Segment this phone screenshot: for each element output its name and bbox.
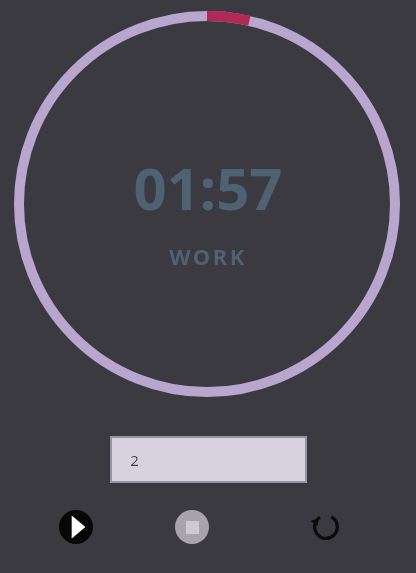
staticText: 01:57	[133, 148, 283, 227]
button[interactable]: Stop	[175, 510, 209, 544]
staticText: WORK	[169, 241, 247, 271]
button[interactable]: 2	[110, 436, 307, 483]
staticText: 2	[130, 450, 139, 470]
button[interactable]: Reset	[309, 510, 343, 544]
button[interactable]: Start	[59, 510, 93, 544]
